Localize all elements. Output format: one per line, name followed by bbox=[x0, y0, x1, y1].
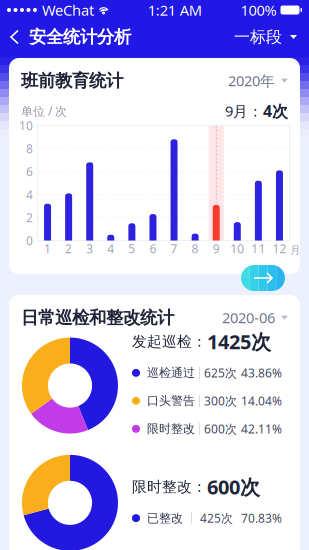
staticText: 口头警告 bbox=[147, 393, 195, 408]
staticText: 6 bbox=[26, 164, 33, 179]
staticText: 42.11% bbox=[241, 421, 282, 437]
staticText: 已整改 bbox=[147, 511, 183, 525]
staticText: 600次 bbox=[207, 474, 260, 500]
staticText: 14.04% bbox=[241, 393, 282, 409]
staticText: 600次 bbox=[204, 421, 237, 437]
staticText: 625次 bbox=[204, 365, 237, 381]
staticText: 发起巡检： bbox=[132, 333, 207, 351]
staticText: 300次 bbox=[204, 393, 237, 409]
button[interactable]: Next bbox=[241, 265, 285, 291]
staticText: 8 bbox=[26, 141, 33, 156]
staticText: 4次 bbox=[263, 100, 288, 121]
staticText: 10 bbox=[19, 118, 33, 133]
button[interactable]: 2020年 bbox=[228, 71, 288, 90]
staticText: 6 bbox=[149, 241, 156, 256]
staticText: 11 bbox=[251, 241, 265, 256]
staticText: 班前教育统计 bbox=[21, 70, 123, 91]
staticText: 70.83% bbox=[241, 510, 282, 526]
staticText: 10 bbox=[230, 241, 244, 256]
staticText: 12 bbox=[272, 241, 286, 256]
staticText: 单位 / 次 bbox=[21, 103, 67, 119]
staticText: 一标段 bbox=[234, 27, 282, 47]
staticText: 3 bbox=[86, 241, 93, 256]
staticText: 1:21 AM bbox=[148, 0, 202, 20]
staticText: 1 bbox=[44, 241, 51, 256]
staticText: 2020-06 bbox=[222, 308, 275, 327]
staticText: 5 bbox=[128, 241, 135, 256]
staticText: 43.86% bbox=[241, 365, 282, 381]
staticText: 9 bbox=[213, 241, 220, 256]
staticText: 日常巡检和整改统计 bbox=[21, 307, 174, 328]
button[interactable]: Back bbox=[0, 20, 29, 54]
staticText: 2 bbox=[65, 241, 72, 256]
button[interactable]: 一标段 bbox=[234, 20, 309, 54]
staticText: 巡检通过 bbox=[147, 365, 195, 380]
staticText: 7 bbox=[170, 241, 177, 256]
staticText: 4 bbox=[26, 187, 33, 202]
staticText: 月 bbox=[290, 243, 301, 257]
staticText: WeChat bbox=[42, 0, 94, 20]
button[interactable]: 2020-06 bbox=[222, 308, 288, 327]
staticText: 425次 bbox=[200, 510, 233, 526]
staticText: 2 bbox=[26, 210, 33, 225]
staticText: 限时整改 bbox=[147, 421, 195, 436]
staticText: 1425次 bbox=[207, 328, 271, 355]
staticText: 限时整改： bbox=[132, 478, 207, 496]
staticText: 100% bbox=[240, 0, 276, 20]
staticText: 8 bbox=[192, 241, 199, 256]
staticText: 9月： bbox=[225, 101, 263, 121]
staticText: 4 bbox=[107, 241, 114, 256]
staticText: 安全统计分析 bbox=[29, 26, 131, 48]
staticText: 0 bbox=[26, 233, 33, 248]
staticText: 2020年 bbox=[228, 71, 275, 90]
